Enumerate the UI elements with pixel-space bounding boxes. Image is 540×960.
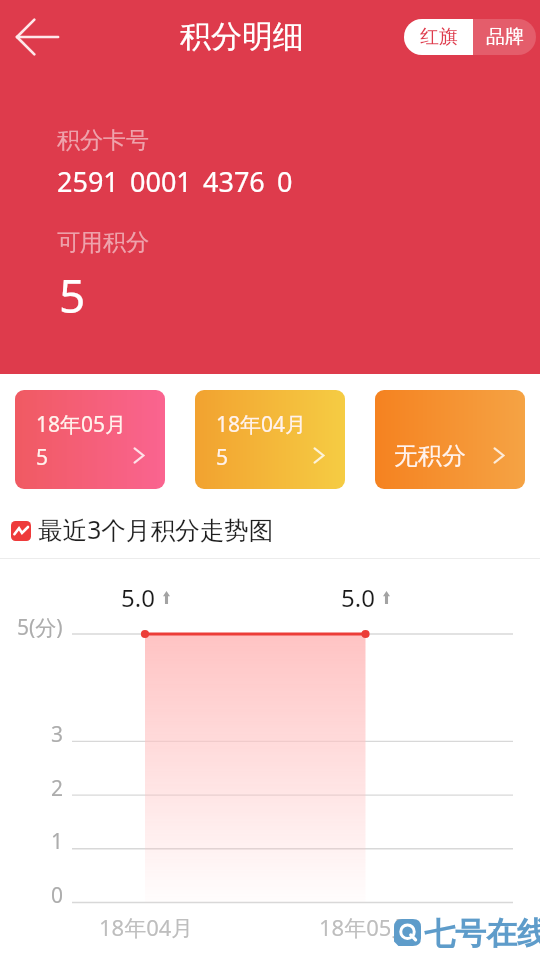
staticText: 18年05月	[36, 410, 127, 439]
staticText: 5.0	[341, 581, 375, 614]
staticText: 0001	[130, 163, 192, 200]
button[interactable]: 品牌	[473, 19, 536, 55]
staticText: 品牌	[486, 25, 524, 49]
staticText: 5	[59, 264, 86, 327]
staticText: 18年05月	[319, 912, 414, 942]
button[interactable]: 无积分	[375, 390, 525, 489]
staticText: 七号在线	[424, 914, 540, 953]
staticText: 1	[51, 827, 64, 856]
staticText: 3	[51, 720, 64, 749]
staticText: 红旗	[420, 25, 458, 49]
staticText: 5(分)	[17, 613, 63, 642]
staticText: 无积分	[394, 441, 466, 471]
staticText: 积分卡号	[57, 126, 149, 155]
button[interactable]: 最近3个月积分走势图	[0, 489, 540, 559]
button[interactable]: 18年05月	[15, 390, 165, 489]
staticText: 0	[51, 881, 64, 910]
staticText: 4376	[203, 163, 265, 200]
staticText: 5.0	[121, 581, 155, 614]
staticText: 积分明细	[180, 17, 304, 56]
staticText: 5	[36, 443, 49, 472]
staticText: 18年04月	[216, 410, 307, 439]
staticText: 可用积分	[57, 228, 149, 257]
staticText: 5	[216, 443, 229, 472]
button[interactable]: 18年04月	[195, 390, 345, 489]
button[interactable]: 红旗	[404, 19, 473, 55]
staticText: 2591	[57, 163, 119, 200]
button[interactable]: Back	[9, 9, 65, 65]
staticText: 2	[51, 774, 64, 803]
staticText: 0	[277, 163, 293, 200]
staticText: 18年04月	[99, 912, 194, 942]
staticText: 最近3个月积分走势图	[38, 513, 274, 547]
